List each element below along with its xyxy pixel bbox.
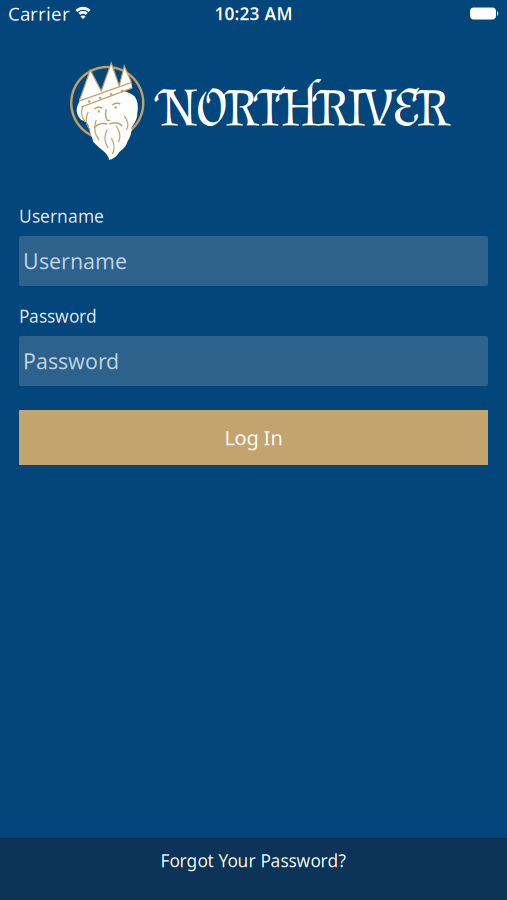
button[interactable]: Password text field (19, 336, 488, 386)
button[interactable]: Log In (19, 410, 488, 465)
staticText: NORTHRIVER (160, 75, 450, 139)
staticText: Carrier (8, 1, 70, 26)
staticText: Username (19, 204, 104, 227)
staticText: 10:23 AM (214, 2, 292, 25)
button[interactable]: Username text field (19, 236, 488, 286)
staticText: Log In (224, 424, 282, 451)
staticText: Password (19, 304, 97, 327)
staticText: Password (23, 347, 119, 375)
staticText: Username (23, 247, 127, 275)
staticText: Forgot Your Password? (160, 849, 346, 872)
button[interactable]: Forgot Your Password? (0, 838, 507, 900)
